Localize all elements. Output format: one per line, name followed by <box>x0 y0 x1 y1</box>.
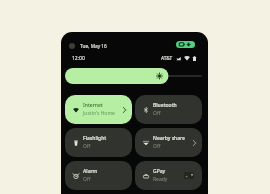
button[interactable]: Battery charging <box>176 41 195 48</box>
staticText: Off <box>83 143 91 150</box>
staticText: Off <box>153 110 161 117</box>
button[interactable]: Bluetooth <box>135 95 202 124</box>
button[interactable]: Brightness <box>65 68 202 84</box>
button[interactable]: Flashlight <box>65 128 132 157</box>
button[interactable]: Internet <box>65 95 132 124</box>
staticText: Nearby share <box>153 135 185 142</box>
staticText: Off <box>83 176 91 183</box>
staticText: Off <box>153 143 161 150</box>
staticText: Internet <box>83 102 103 109</box>
staticText: Bluetooth <box>153 102 177 109</box>
staticText: GPay <box>153 168 166 175</box>
staticText: AT&T <box>161 55 173 62</box>
staticText: 12:00 <box>72 55 85 62</box>
staticText: Ready <box>153 176 168 183</box>
staticText: Alarm <box>83 168 98 175</box>
button[interactable]: Alarm <box>65 161 132 190</box>
staticText: Flashlight <box>83 135 107 142</box>
button[interactable]: Nearby share <box>135 128 202 157</box>
staticText: Tue, May 16 <box>80 43 107 50</box>
staticText: Justin's Home <box>83 110 115 117</box>
button[interactable]: GPay <box>135 161 202 190</box>
button[interactable]: Account <box>69 43 75 49</box>
